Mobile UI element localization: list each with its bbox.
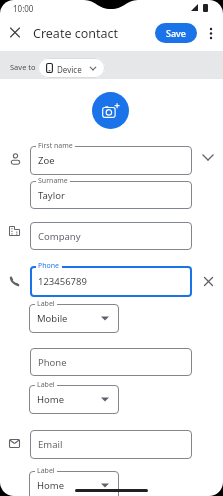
staticText: 123456789 (38, 275, 87, 288)
staticText: Label (37, 380, 55, 390)
button[interactable] (205, 24, 217, 42)
button[interactable] (201, 151, 215, 163)
button[interactable] (30, 222, 192, 250)
button[interactable] (30, 348, 192, 376)
button[interactable] (30, 430, 192, 459)
staticText: Surname (38, 176, 68, 186)
staticText: Company (38, 230, 81, 243)
button[interactable] (29, 304, 119, 333)
staticText: Home (37, 479, 65, 492)
staticText: Taylor (38, 189, 65, 202)
staticText: Label (37, 466, 55, 476)
staticText: Save to (10, 62, 36, 72)
staticText: Label (37, 299, 55, 309)
button[interactable]: Save (155, 23, 197, 43)
button[interactable] (92, 92, 129, 129)
staticText: Create contact (33, 25, 119, 42)
staticText: Mobile (37, 312, 68, 325)
button[interactable] (29, 471, 119, 496)
staticText: Save (166, 27, 187, 39)
button[interactable] (30, 266, 192, 297)
button[interactable] (29, 385, 119, 414)
staticText: Email (38, 438, 63, 451)
staticText: Device (57, 64, 82, 75)
staticText: Zoe (38, 154, 55, 167)
staticText: Phone (38, 261, 60, 271)
button[interactable] (9, 26, 22, 39)
button[interactable] (202, 275, 215, 288)
staticText: Phone (38, 356, 67, 369)
staticText: 10:00 (13, 3, 34, 14)
button[interactable]: Device (38, 58, 105, 78)
staticText: Home (37, 393, 65, 406)
button[interactable] (30, 146, 192, 175)
staticText: First name (38, 141, 73, 151)
button[interactable] (30, 181, 192, 209)
